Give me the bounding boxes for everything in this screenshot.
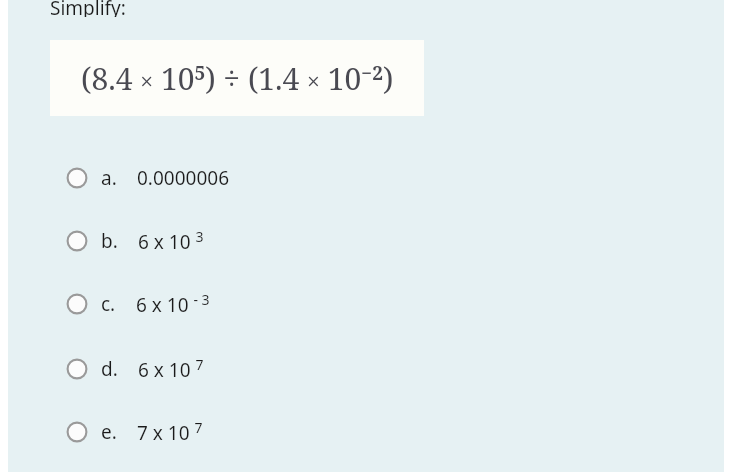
staticText: 7 x 10 7 xyxy=(137,418,203,445)
staticText: 6 x 10 3 xyxy=(138,227,204,254)
staticText: b. xyxy=(101,228,118,254)
staticText: 0.0000006 xyxy=(137,165,230,191)
button[interactable]: b. xyxy=(0,227,739,254)
staticText: c. xyxy=(101,291,116,317)
staticText: (8.4 × 105) ÷ (1.4 × 10−2) xyxy=(81,58,394,99)
button[interactable]: c. xyxy=(0,290,739,317)
staticText: 6 x 10 7 xyxy=(138,355,204,382)
button[interactable]: d. xyxy=(0,355,739,382)
button[interactable]: a. xyxy=(0,165,739,191)
staticText: d. xyxy=(101,356,118,382)
staticText: e. xyxy=(101,419,117,445)
button[interactable]: e. xyxy=(0,418,739,445)
staticText: Simplify: xyxy=(50,0,126,17)
staticText: a. xyxy=(101,165,117,191)
staticText: 6 x 10 - 3 xyxy=(136,290,210,317)
